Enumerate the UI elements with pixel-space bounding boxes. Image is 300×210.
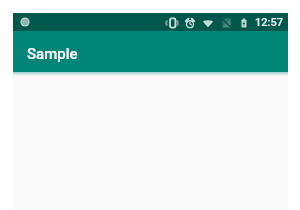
- other: Wi-Fi connected: [199, 17, 217, 29]
- other: Notification: [20, 17, 30, 27]
- other: Alarm set: [181, 17, 199, 29]
- staticText: Sample: [27, 45, 78, 63]
- other: Battery charging: [235, 17, 253, 29]
- staticText: 12:57: [255, 16, 283, 29]
- other: No SIM card: [217, 17, 235, 29]
- button[interactable]: Sample: [13, 31, 288, 72]
- other: Screen rotation locked: [163, 17, 181, 29]
